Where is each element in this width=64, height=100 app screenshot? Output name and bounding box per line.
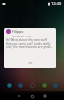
button[interactable]: Home (29, 93, 35, 99)
staticText: Messenger • now (12, 34, 32, 37)
button[interactable]: All apps (28, 81, 36, 89)
button[interactable]: Filippo (4, 28, 56, 68)
button[interactable]: Recents (42, 93, 48, 99)
staticText: Hi! What about this new stuff that just … (6, 38, 53, 49)
staticText: 12:30 (51, 1, 62, 6)
button[interactable]: Messages (16, 81, 24, 89)
button[interactable]: Camera (40, 81, 48, 89)
button[interactable]: Back (16, 93, 22, 99)
button[interactable]: Browser (51, 81, 59, 89)
button[interactable]: Phone (5, 81, 13, 89)
staticText: Filippo (12, 29, 24, 34)
